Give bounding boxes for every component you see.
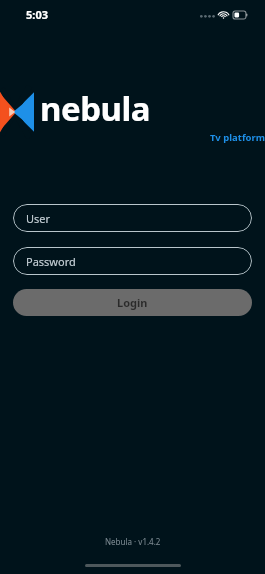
- staticText: Nebula · v1.4.2: [105, 536, 161, 547]
- staticText: User: [26, 211, 51, 226]
- button[interactable]: Login: [13, 289, 252, 316]
- staticText: Password: [26, 254, 76, 269]
- staticText: Login: [117, 295, 148, 310]
- button[interactable]: User: [13, 204, 252, 232]
- staticText: 5:03: [26, 7, 48, 22]
- staticText: Tv platform: [40, 131, 265, 144]
- button[interactable]: Password: [13, 247, 252, 275]
- staticText: nebula: [40, 86, 151, 131]
